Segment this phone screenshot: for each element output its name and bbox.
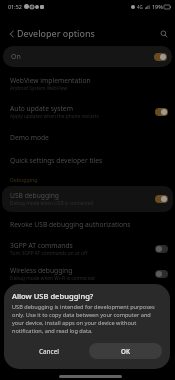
staticText: 3GPP AT commands [10, 241, 73, 250]
button[interactable]: USB debugging [2, 186, 173, 212]
staticText: WebView implementation [10, 76, 91, 85]
staticText: Turn 3GPP AT commands on or off [10, 250, 88, 257]
staticText: USB debugging [10, 191, 59, 200]
staticText: On [11, 52, 154, 62]
staticText: 4G [137, 4, 143, 10]
button[interactable]: Back [3, 25, 20, 42]
button[interactable]: Demo mode [2, 126, 173, 149]
button[interactable]: Switch off [155, 270, 168, 278]
button[interactable]: Switch off [155, 245, 168, 253]
button[interactable]: Wireless debugging [2, 261, 173, 286]
staticText: Quick settings developer tiles [10, 156, 103, 165]
staticText: 19% [152, 3, 163, 10]
button[interactable]: Switch on [155, 108, 168, 116]
staticText: Android System WebView [10, 85, 68, 92]
button[interactable]: Switch on [155, 195, 168, 203]
staticText: Auto update system [10, 104, 73, 113]
button[interactable]: 3GPP AT commands [2, 236, 173, 261]
button[interactable]: OK [89, 343, 162, 359]
staticText: USB debugging is intended for developmen… [12, 303, 162, 335]
staticText: Debugging [10, 176, 38, 183]
staticText: Debug mode when Wi-Fi is connected [10, 275, 95, 282]
button[interactable]: On [3, 46, 172, 67]
staticText: Revoke USB debugging authorizations [10, 220, 131, 229]
button[interactable]: Cancel [12, 343, 85, 359]
button[interactable]: Revoke USB debugging authorizations [2, 212, 173, 236]
staticText: Wireless debugging [10, 266, 73, 275]
button[interactable]: Search [155, 25, 172, 42]
staticText: Allow USB debugging? [12, 291, 94, 301]
button[interactable]: WebView implementation [2, 70, 173, 98]
staticText: Apply updates when the phone restarts [10, 113, 99, 120]
staticText: Debug mode when USB is connected [10, 200, 94, 207]
staticText: 01:52 [8, 3, 22, 10]
staticText: Cancel [39, 347, 59, 356]
button[interactable]: Switch on [154, 53, 167, 61]
staticText: Demo mode [10, 133, 49, 142]
button[interactable]: Quick settings developer tiles [2, 149, 173, 172]
button[interactable]: Auto update system [2, 98, 173, 126]
staticText: OK [121, 347, 130, 356]
staticText: Developer options [17, 27, 95, 39]
